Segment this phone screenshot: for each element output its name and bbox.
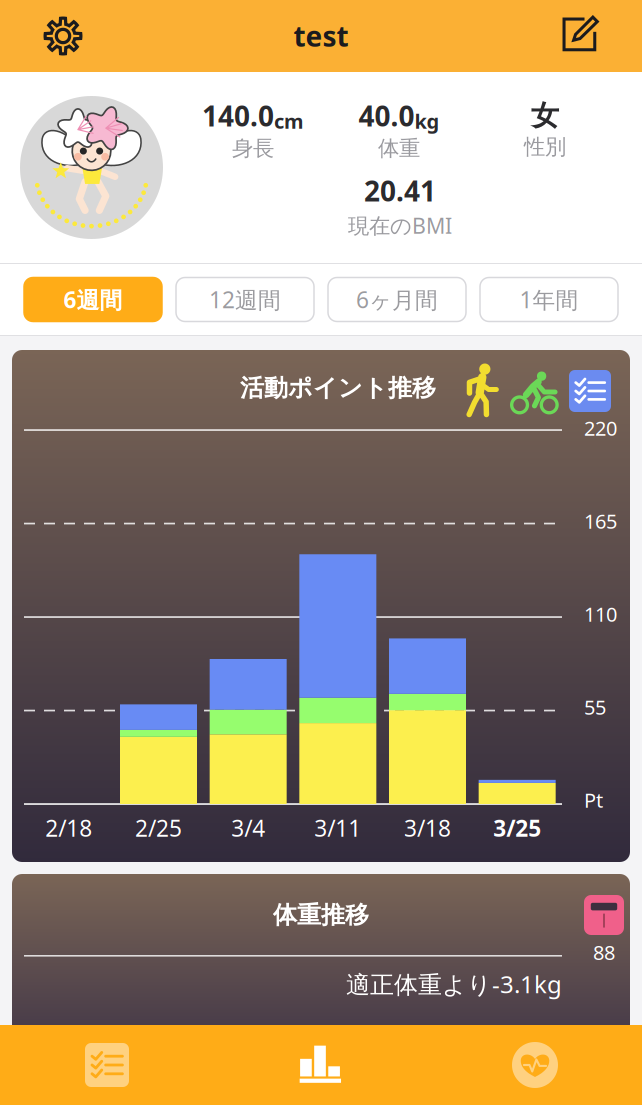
staticText: 110: [584, 601, 617, 627]
staticText: 体重推移: [273, 900, 369, 930]
button[interactable]: Graph: [214, 1025, 428, 1105]
staticText: 20.41: [364, 172, 436, 209]
staticText: 6ヶ月間: [356, 284, 438, 314]
staticText: 2/18: [45, 813, 92, 843]
button[interactable]: Records: [0, 1025, 214, 1105]
staticText: 3/18: [404, 813, 451, 843]
staticText: 220: [584, 415, 617, 441]
button[interactable]: Health: [428, 1025, 642, 1105]
button[interactable]: 6週間: [24, 277, 162, 321]
staticText: 165: [584, 508, 617, 534]
staticText: 140.0: [202, 97, 274, 134]
staticText: 3/4: [231, 813, 265, 843]
button[interactable]: 12週間: [176, 277, 314, 321]
staticText: Pt: [584, 787, 603, 813]
button[interactable]: Settings: [24, 0, 102, 72]
staticText: kg: [414, 108, 439, 134]
staticText: 体重: [378, 135, 420, 161]
staticText: 3/25: [493, 813, 541, 843]
staticText: 55: [584, 694, 606, 720]
button[interactable]: 1年間: [480, 277, 618, 321]
button[interactable]: 6ヶ月間: [328, 277, 466, 321]
staticText: 1年間: [519, 284, 578, 314]
staticText: 性別: [524, 134, 566, 160]
staticText: 2/25: [135, 813, 182, 843]
staticText: 現在のBMI: [348, 211, 452, 239]
staticText: 女: [531, 98, 559, 133]
staticText: 12週間: [209, 284, 281, 314]
staticText: 身長: [232, 135, 274, 161]
staticText: 活動ポイント推移: [240, 373, 436, 403]
staticText: 適正体重より-3.1kg: [346, 968, 562, 1000]
staticText: 3/11: [314, 813, 361, 843]
staticText: 88: [593, 939, 615, 966]
staticText: 40.0: [358, 97, 414, 134]
staticText: test: [293, 17, 348, 55]
button[interactable]: Edit: [542, 0, 620, 72]
staticText: cm: [274, 108, 304, 134]
staticText: 6週間: [63, 284, 122, 314]
